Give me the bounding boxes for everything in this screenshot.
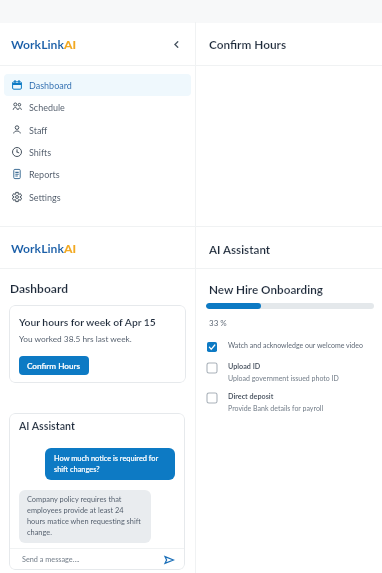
button[interactable]: Staff: [4, 119, 191, 141]
staticText: AI Assistant: [209, 243, 271, 257]
button[interactable]: Watch and acknowledge our welcome video: [196, 341, 382, 351]
staticText: Your hours for week of Apr 15: [19, 316, 156, 328]
button[interactable]: Schedule: [4, 96, 191, 118]
staticText: Upload government issued photo ID: [228, 374, 339, 382]
button[interactable]: Dashboard: [4, 74, 191, 96]
staticText: Direct deposit: [228, 392, 274, 401]
staticText: Upload ID: [228, 362, 261, 371]
staticText: Dashboard: [10, 281, 69, 295]
staticText: WorkLink: [11, 37, 64, 52]
staticText: Shifts: [29, 147, 52, 158]
staticText: Settings: [29, 192, 61, 203]
staticText: Staff: [29, 125, 48, 136]
staticText: Company policy requires that employees p…: [27, 495, 143, 537]
button[interactable]: Shifts: [4, 141, 191, 163]
staticText: AI: [64, 241, 77, 256]
staticText: Confirm Hours: [27, 361, 81, 371]
staticText: You worked 38.5 hrs last week.: [19, 334, 132, 344]
staticText: AI: [64, 37, 77, 52]
staticText: Dashboard: [29, 80, 72, 91]
button[interactable]: Reports: [4, 163, 191, 185]
button[interactable]: Confirm Hours: [19, 356, 89, 375]
staticText: Send a message....: [22, 555, 80, 564]
staticText: Provide Bank details for payroll: [228, 404, 324, 412]
staticText: Watch and acknowledge our welcome video: [228, 341, 363, 349]
button[interactable]: Send: [163, 554, 175, 566]
staticText: Reports: [29, 169, 60, 180]
button[interactable]: Settings: [4, 186, 191, 208]
staticText: New Hire Onboarding: [209, 282, 323, 296]
staticText: WorkLink: [11, 241, 64, 256]
staticText: AI Assistant: [19, 420, 75, 433]
button[interactable]: Collapse sidebar: [168, 36, 184, 52]
button[interactable]: Upload ID: [196, 362, 382, 382]
staticText: Schedule: [29, 102, 65, 113]
staticText: 33 %: [209, 318, 227, 328]
button[interactable]: Direct deposit: [196, 392, 382, 412]
staticText: How much notice is required for shift ch…: [54, 454, 166, 474]
staticText: Confirm Hours: [209, 37, 287, 51]
